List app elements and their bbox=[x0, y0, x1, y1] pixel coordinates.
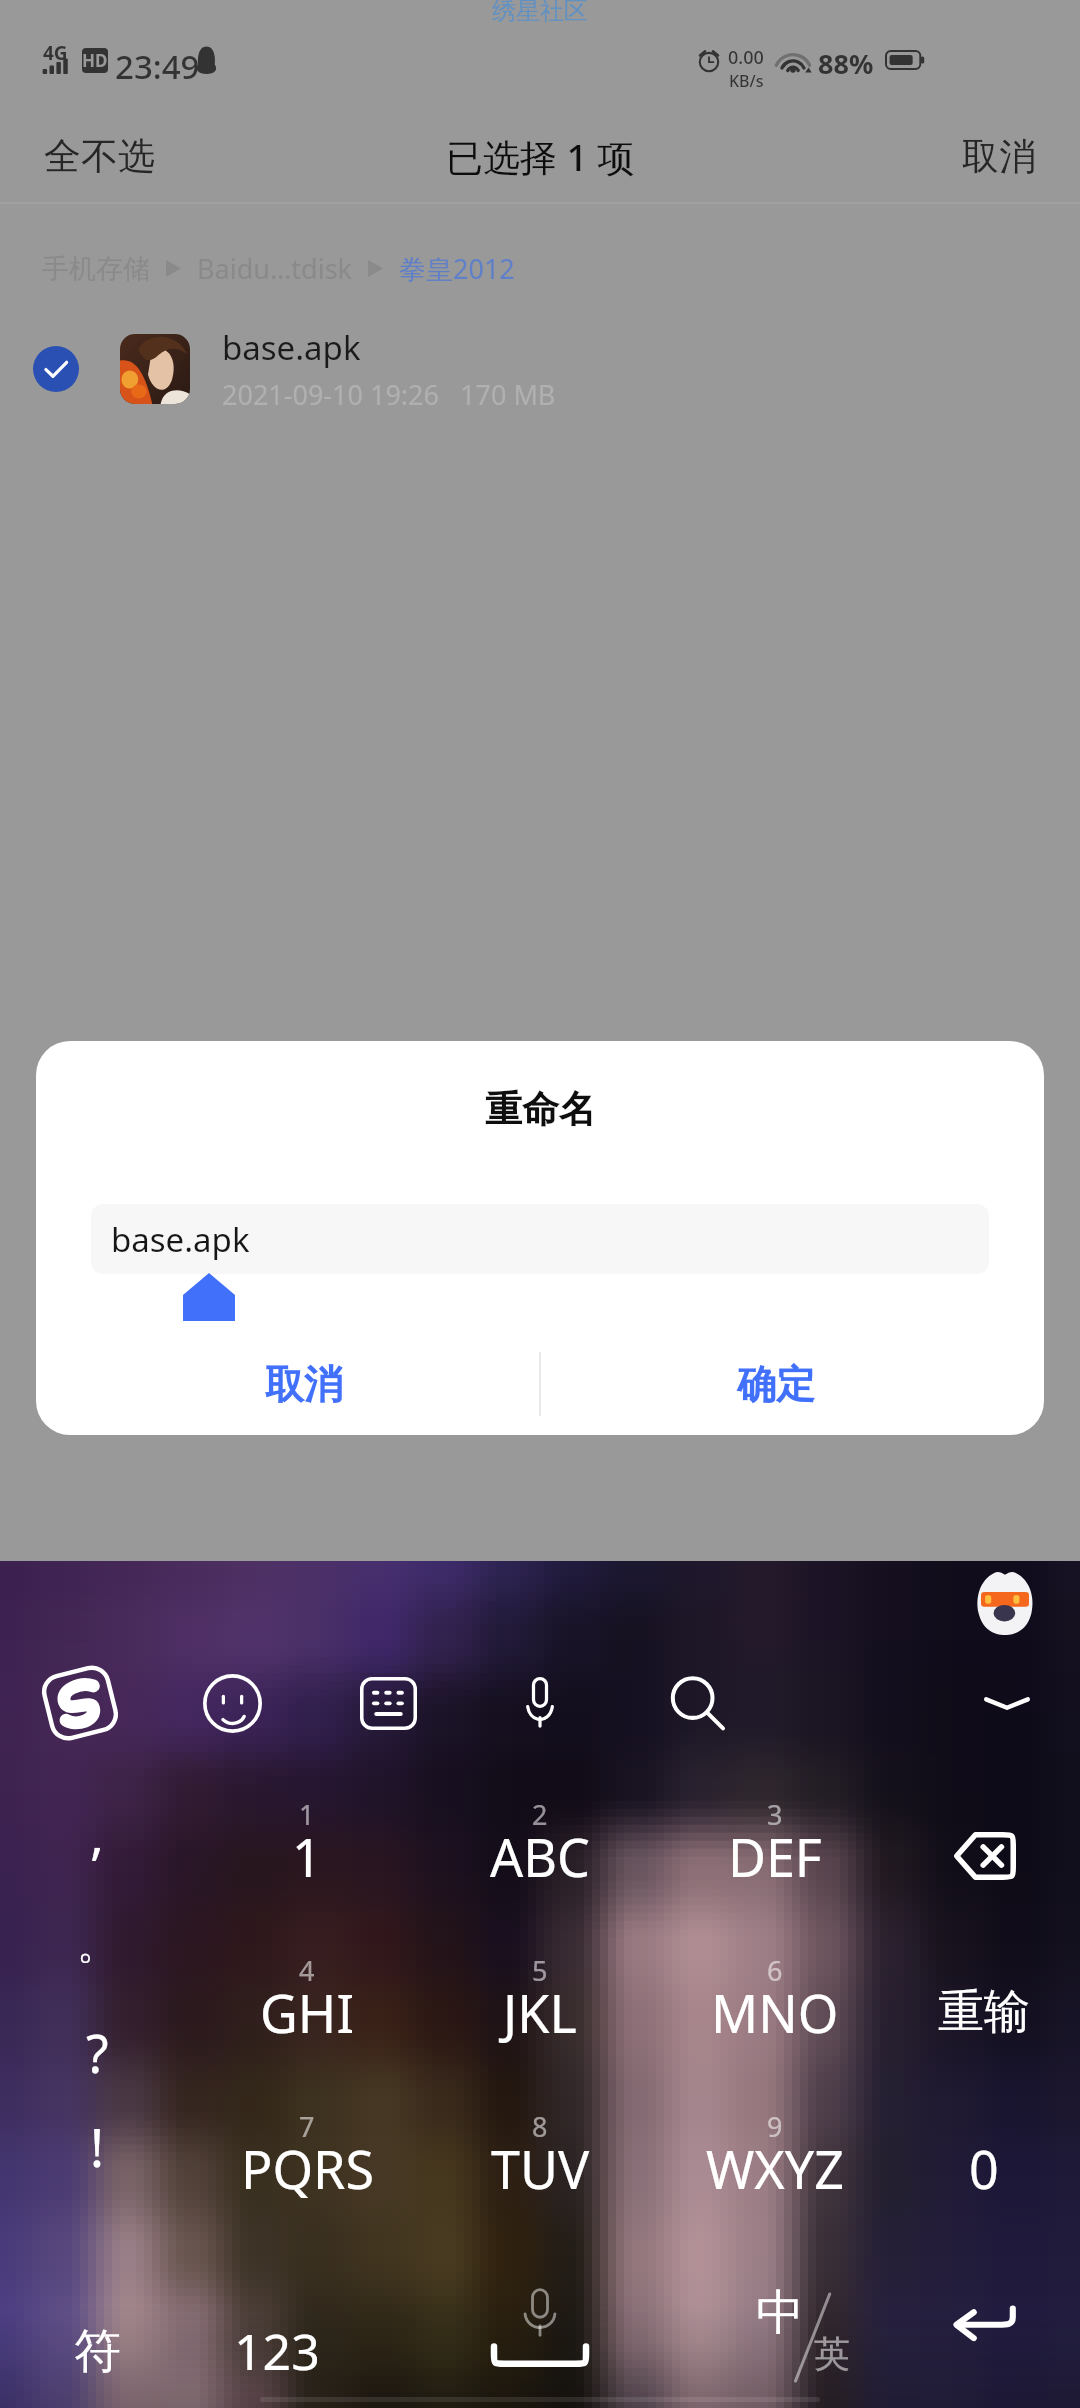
staticText: TUV bbox=[491, 2133, 590, 2204]
staticText: 重命名 bbox=[485, 1086, 596, 1133]
button[interactable]: Backspace bbox=[894, 1786, 1074, 1926]
button[interactable]: DEF bbox=[655, 1778, 895, 1934]
button[interactable]: ABC bbox=[420, 1778, 660, 1934]
button[interactable]: Baidu…tdisk bbox=[197, 250, 352, 287]
staticText: 2 bbox=[532, 1796, 548, 1833]
staticText: , bbox=[90, 1798, 104, 1869]
staticText: 3 bbox=[767, 1796, 783, 1833]
button[interactable]: 1 bbox=[187, 1778, 427, 1934]
button[interactable]: Space bbox=[450, 2261, 630, 2401]
button[interactable]: 0 bbox=[864, 2090, 1080, 2246]
button[interactable]: Comma bbox=[32, 1781, 162, 1885]
button[interactable]: TUV bbox=[420, 2090, 660, 2246]
button[interactable]: 手机存储 bbox=[42, 252, 150, 286]
button[interactable]: Sogou keyboard bbox=[32, 1655, 128, 1751]
staticText: 88% bbox=[818, 45, 874, 82]
staticText: 1 bbox=[299, 1796, 315, 1833]
staticText: ABC bbox=[490, 1821, 590, 1892]
staticText: 取消 bbox=[962, 133, 1036, 180]
staticText: 1 bbox=[292, 1821, 322, 1892]
staticText: ! bbox=[90, 2111, 104, 2182]
button[interactable]: 取消 bbox=[918, 117, 1080, 196]
staticText: 。 bbox=[77, 1919, 117, 1969]
staticText: 0 bbox=[969, 2133, 999, 2204]
button[interactable]: Hide keyboard bbox=[959, 1655, 1055, 1751]
button[interactable]: Assistant bbox=[965, 1563, 1045, 1643]
button[interactable]: 确定 bbox=[616, 1334, 936, 1434]
staticText: 英 bbox=[814, 2331, 850, 2376]
staticText: DEF bbox=[728, 1821, 822, 1892]
staticText: 0.00 bbox=[728, 45, 764, 70]
button[interactable]: Exclamation mark bbox=[32, 2094, 162, 2198]
staticText: 取消 bbox=[265, 1360, 343, 1409]
staticText: 6 bbox=[767, 1952, 783, 1989]
staticText: 23:49 bbox=[115, 44, 200, 89]
staticText: 7 bbox=[299, 2108, 315, 2145]
staticText: ? bbox=[86, 2017, 109, 2088]
staticText: 重输 bbox=[938, 1983, 1030, 2041]
button[interactable]: Enter bbox=[894, 2253, 1074, 2393]
staticText: HD bbox=[82, 49, 108, 72]
staticText: 绣星社区 bbox=[492, 0, 588, 26]
staticText: base.apk bbox=[111, 1217, 250, 1262]
staticText: PQRS bbox=[241, 2133, 374, 2204]
staticText: GHI bbox=[260, 1977, 355, 2048]
staticText: 8 bbox=[532, 2108, 548, 2145]
staticText: KB/s bbox=[729, 70, 764, 92]
staticText: 123 bbox=[234, 2317, 320, 2385]
button[interactable]: 拳皇2012 bbox=[399, 250, 515, 287]
staticText: WXYZ bbox=[706, 2133, 845, 2204]
button[interactable]: 取消 bbox=[144, 1334, 464, 1434]
button[interactable]: PQRS bbox=[187, 2090, 427, 2246]
button[interactable]: JKL bbox=[420, 1934, 660, 2090]
button[interactable]: Period bbox=[32, 1892, 162, 1996]
staticText: 5 bbox=[532, 1952, 548, 1989]
staticText: base.apk bbox=[222, 325, 361, 370]
button[interactable]: Keyboard layout bbox=[340, 1655, 436, 1751]
button[interactable]: Voice input bbox=[492, 1655, 588, 1751]
button[interactable]: base.apk bbox=[0, 313, 1080, 425]
staticText: 2021-09-10 19:26 170 MB bbox=[222, 376, 556, 413]
staticText: MNO bbox=[711, 1977, 839, 2048]
button[interactable]: Search bbox=[649, 1655, 745, 1751]
staticText: 符 bbox=[74, 2322, 121, 2381]
staticText: JKL bbox=[503, 1977, 577, 2048]
staticText: 4 bbox=[299, 1952, 315, 1989]
staticText: 4G bbox=[43, 40, 68, 66]
button[interactable]: GHI bbox=[187, 1934, 427, 2090]
staticText: 全不选 bbox=[44, 133, 155, 180]
staticText: 中 bbox=[756, 2283, 804, 2343]
staticText: 确定 bbox=[737, 1360, 815, 1409]
button[interactable]: Emoji bbox=[184, 1655, 280, 1751]
button[interactable]: Numbers bbox=[187, 2291, 367, 2408]
button[interactable]: WXYZ bbox=[655, 2090, 895, 2246]
button[interactable]: Chinese or English bbox=[710, 2273, 900, 2408]
button[interactable]: Question mark bbox=[32, 2000, 162, 2104]
button[interactable]: 重输 bbox=[864, 1934, 1080, 2090]
button[interactable]: 全不选 bbox=[0, 117, 199, 196]
button[interactable]: MNO bbox=[655, 1934, 895, 2090]
button[interactable]: Symbols bbox=[32, 2291, 162, 2408]
button[interactable]: base.apk bbox=[91, 1204, 989, 1274]
staticText: 9 bbox=[767, 2108, 783, 2145]
staticText: 已选择 1 项 bbox=[446, 131, 635, 182]
